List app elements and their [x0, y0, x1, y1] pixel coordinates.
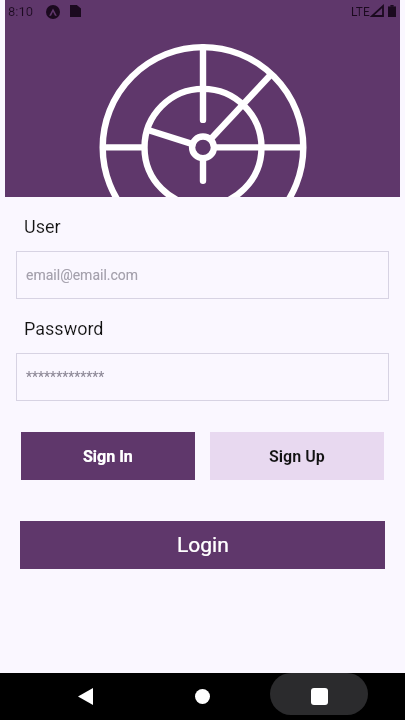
- button[interactable]: Login: [20, 521, 385, 569]
- staticText: *************: [26, 369, 105, 385]
- button[interactable]: Sign Up: [210, 432, 384, 480]
- staticText: User: [24, 216, 61, 237]
- button[interactable]: Back: [56, 673, 115, 720]
- staticText: Sign In: [83, 447, 133, 466]
- button[interactable]: Recent apps: [270, 673, 368, 720]
- staticText: Password: [24, 318, 104, 339]
- staticText: email@email.com: [26, 267, 139, 283]
- staticText: Sign Up: [269, 447, 325, 466]
- button[interactable]: Sign In: [21, 432, 195, 480]
- staticText: 8:10: [8, 4, 34, 19]
- button[interactable]: Home: [173, 673, 232, 720]
- staticText: LTE: [351, 5, 370, 19]
- staticText: Login: [177, 533, 229, 558]
- button[interactable]: *************: [16, 353, 389, 401]
- button[interactable]: email@email.com: [16, 251, 389, 299]
